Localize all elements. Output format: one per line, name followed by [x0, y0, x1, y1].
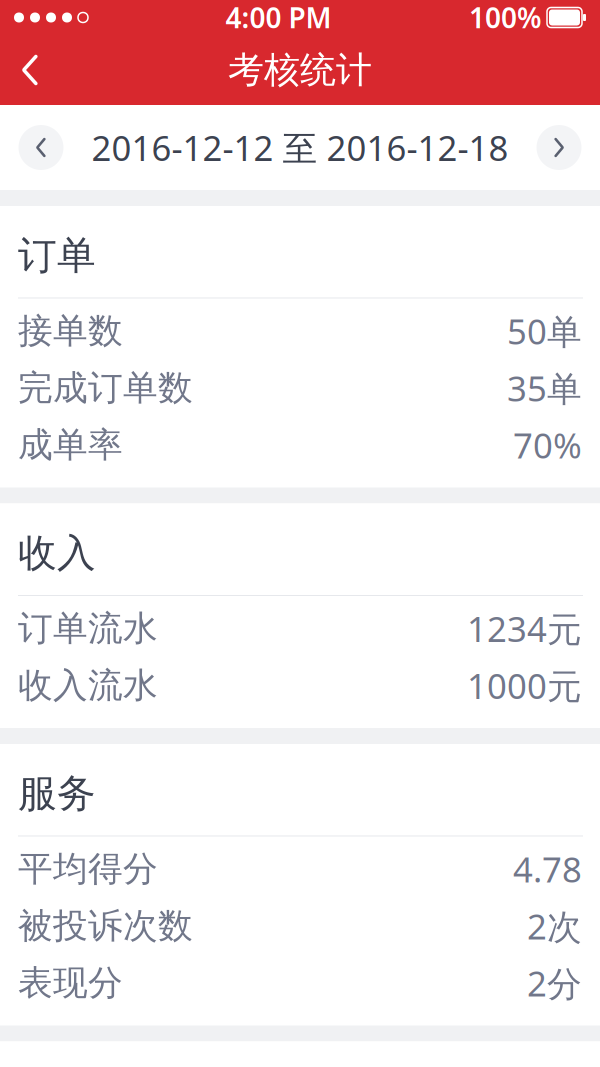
staticText: 接单数 [18, 310, 123, 352]
staticText: 表现分 [18, 962, 123, 1004]
staticText: 2次 [527, 903, 582, 949]
staticText: 完成订单数 [18, 367, 193, 409]
staticText: 考核统计 [228, 48, 372, 92]
staticText: 1234元 [467, 605, 582, 651]
staticText: 收入流水 [18, 664, 158, 707]
staticText: 订单流水 [18, 607, 158, 650]
staticText: 2016-12-12 至 2016-12-18 [91, 124, 508, 170]
staticText: 成单率 [18, 424, 123, 466]
staticText: 70% [513, 422, 582, 468]
staticText: 1000元 [467, 662, 582, 708]
staticText: 服务 [18, 770, 96, 817]
staticText: 被投诉次数 [18, 905, 193, 947]
staticText: 4.78 [513, 846, 582, 892]
staticText: 4:00 PM [225, 0, 331, 36]
staticText: 100% [469, 0, 542, 36]
staticText: 订单 [18, 232, 96, 279]
staticText: 35单 [507, 365, 582, 411]
button[interactable]: Back [0, 35, 60, 105]
staticText: 平均得分 [18, 848, 158, 890]
staticText: 收入 [18, 529, 96, 577]
staticText: 50单 [507, 308, 582, 354]
button[interactable]: Next week [531, 119, 587, 175]
staticText: 2分 [527, 960, 582, 1006]
button[interactable]: Previous week [13, 119, 69, 175]
